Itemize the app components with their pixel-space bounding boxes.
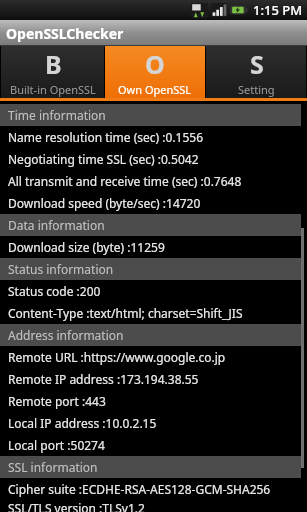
staticText: Setting bbox=[238, 82, 275, 97]
staticText: S bbox=[250, 47, 264, 81]
staticText: Negotiating time SSL (sec) :0.5042 bbox=[8, 151, 199, 167]
button[interactable]: Name resolution time (sec) :0.1556 bbox=[8, 126, 303, 148]
other: Battery charging bbox=[230, 4, 248, 16]
button[interactable]: S bbox=[206, 46, 306, 98]
button[interactable]: Time information bbox=[8, 104, 301, 126]
button[interactable]: Local IP address :10.0.2.15 bbox=[8, 412, 303, 434]
button[interactable]: O bbox=[105, 46, 205, 98]
staticText: B bbox=[45, 47, 62, 81]
staticText: Name resolution time (sec) :0.1556 bbox=[8, 129, 204, 145]
button[interactable]: SSL/TLS version :TLSv1.2 bbox=[8, 500, 303, 512]
staticText: Local IP address :10.0.2.15 bbox=[8, 415, 157, 431]
staticText: Local port :50274 bbox=[8, 437, 105, 453]
button[interactable]: Status code :200 bbox=[8, 280, 303, 302]
staticText: Data information bbox=[8, 217, 105, 233]
staticText: Cipher suite :ECDHE-RSA-AES128-GCM-SHA25… bbox=[8, 481, 271, 497]
staticText: Own OpenSSL bbox=[118, 82, 192, 97]
button[interactable]: Remote URL :https://www.google.co.jp bbox=[8, 346, 303, 368]
button[interactable]: Address information bbox=[8, 324, 301, 346]
staticText: SSL/TLS version :TLSv1.2 bbox=[8, 500, 145, 512]
staticText: O bbox=[145, 47, 165, 81]
staticText: Content-Type :text/html; charset=Shift_J… bbox=[8, 305, 243, 321]
staticText: Status code :200 bbox=[8, 283, 101, 299]
button[interactable]: Download size (byte) :11259 bbox=[8, 236, 303, 258]
button[interactable]: B bbox=[1, 46, 104, 98]
other: Signal strength bbox=[211, 3, 227, 17]
staticText: Time information bbox=[8, 107, 106, 123]
staticText: Status information bbox=[8, 261, 114, 277]
staticText: SSL information bbox=[8, 459, 98, 475]
staticText: OpenSSLChecker bbox=[6, 24, 124, 43]
button[interactable]: Data information bbox=[8, 214, 301, 236]
button[interactable]: Local port :50274 bbox=[8, 434, 303, 456]
button[interactable]: All transmit and receive time (sec) :0.7… bbox=[8, 170, 303, 192]
staticText: Download speed (byte/sec) :14720 bbox=[8, 195, 201, 211]
staticText: 1:15 PM bbox=[253, 1, 303, 19]
button[interactable]: Remote port :443 bbox=[8, 390, 303, 412]
button[interactable]: Negotiating time SSL (sec) :0.5042 bbox=[8, 148, 303, 170]
staticText: Built-in OpenSSL bbox=[10, 82, 96, 97]
button[interactable]: Cipher suite :ECDHE-RSA-AES128-GCM-SHA25… bbox=[8, 478, 303, 500]
staticText: Remote URL :https://www.google.co.jp bbox=[8, 349, 226, 365]
staticText: Address information bbox=[8, 327, 124, 343]
staticText: Download size (byte) :11259 bbox=[8, 239, 165, 255]
button[interactable]: Status information bbox=[8, 258, 301, 280]
button[interactable]: SSL information bbox=[8, 456, 301, 478]
staticText: Remote port :443 bbox=[8, 393, 106, 409]
button[interactable]: Download speed (byte/sec) :14720 bbox=[8, 192, 303, 214]
button[interactable]: Content-Type :text/html; charset=Shift_J… bbox=[8, 302, 303, 324]
staticText: All transmit and receive time (sec) :0.7… bbox=[8, 173, 242, 189]
staticText: Remote IP address :173.194.38.55 bbox=[8, 371, 199, 387]
other: 3G data bbox=[191, 3, 208, 18]
button[interactable]: Remote IP address :173.194.38.55 bbox=[8, 368, 303, 390]
